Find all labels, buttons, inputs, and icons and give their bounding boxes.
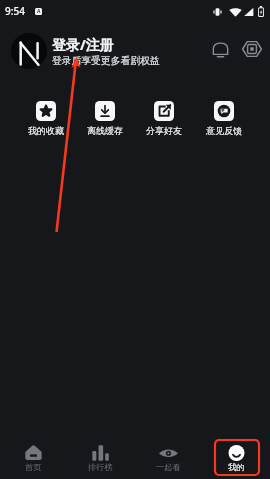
button[interactable]: 离线缓存 xyxy=(75,101,134,136)
button[interactable]: 首页 xyxy=(0,445,67,472)
button[interactable]: 意见反馈 xyxy=(194,101,254,136)
button[interactable]: 我的收藏 xyxy=(16,101,75,136)
staticText: 一起看 xyxy=(156,462,181,472)
staticText: 离线缓存 xyxy=(87,125,123,136)
staticText: 意见反馈 xyxy=(206,125,242,136)
button[interactable]: 排行榜 xyxy=(67,445,134,472)
staticText: A xyxy=(37,8,41,15)
staticText: 首页 xyxy=(25,462,42,472)
button[interactable]: 分享好友 xyxy=(134,101,194,136)
button[interactable]: 登录/注册 xyxy=(52,35,207,67)
button[interactable]: Notifications xyxy=(207,38,233,64)
button[interactable]: Settings xyxy=(239,38,265,64)
staticText: 排行榜 xyxy=(88,462,113,472)
staticText: 9:54 xyxy=(5,4,25,18)
button[interactable]: 一起看 xyxy=(134,445,202,472)
staticText: 我的 xyxy=(228,462,245,472)
staticText: 分享好友 xyxy=(146,125,182,136)
button[interactable]: 我的 xyxy=(227,445,246,472)
staticText: 登录/注册 xyxy=(52,35,114,54)
button[interactable] xyxy=(11,33,47,69)
staticText: 登录后享受更多看剧权益 xyxy=(52,55,160,67)
staticText: 我的收藏 xyxy=(28,125,64,136)
